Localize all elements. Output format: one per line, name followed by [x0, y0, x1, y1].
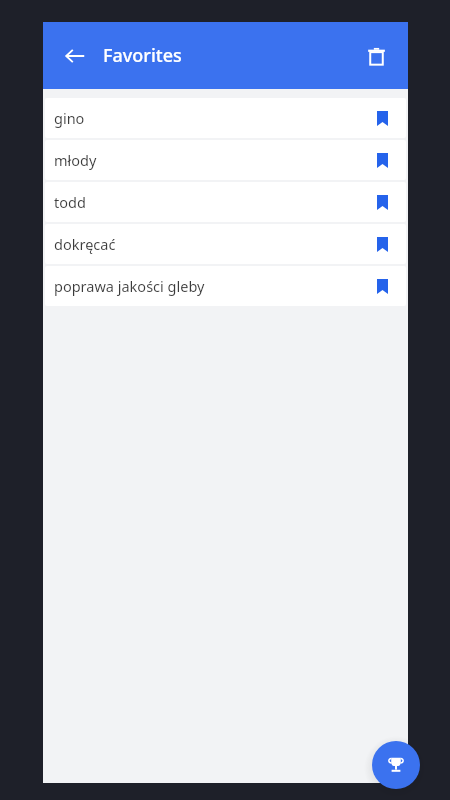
staticText: poprawa jakości gleby: [54, 276, 366, 296]
button[interactable]: dokręcać: [45, 224, 406, 264]
button[interactable]: Remove bookmark: [366, 144, 398, 176]
staticText: todd: [54, 192, 366, 212]
button[interactable]: Delete all favorites: [356, 36, 396, 76]
staticText: młody: [54, 150, 366, 170]
button[interactable]: poprawa jakości gleby: [45, 266, 406, 306]
button[interactable]: Remove bookmark: [366, 270, 398, 302]
button[interactable]: Remove bookmark: [366, 186, 398, 218]
button[interactable]: Quiz: [372, 741, 420, 789]
staticText: dokręcać: [54, 234, 366, 254]
button[interactable]: Remove bookmark: [366, 228, 398, 260]
button[interactable]: gino: [45, 98, 406, 138]
button[interactable]: Back: [55, 36, 95, 76]
button[interactable]: todd: [45, 182, 406, 222]
staticText: Favorites: [103, 43, 182, 68]
button[interactable]: młody: [45, 140, 406, 180]
button[interactable]: Remove bookmark: [366, 102, 398, 134]
staticText: gino: [54, 108, 366, 128]
